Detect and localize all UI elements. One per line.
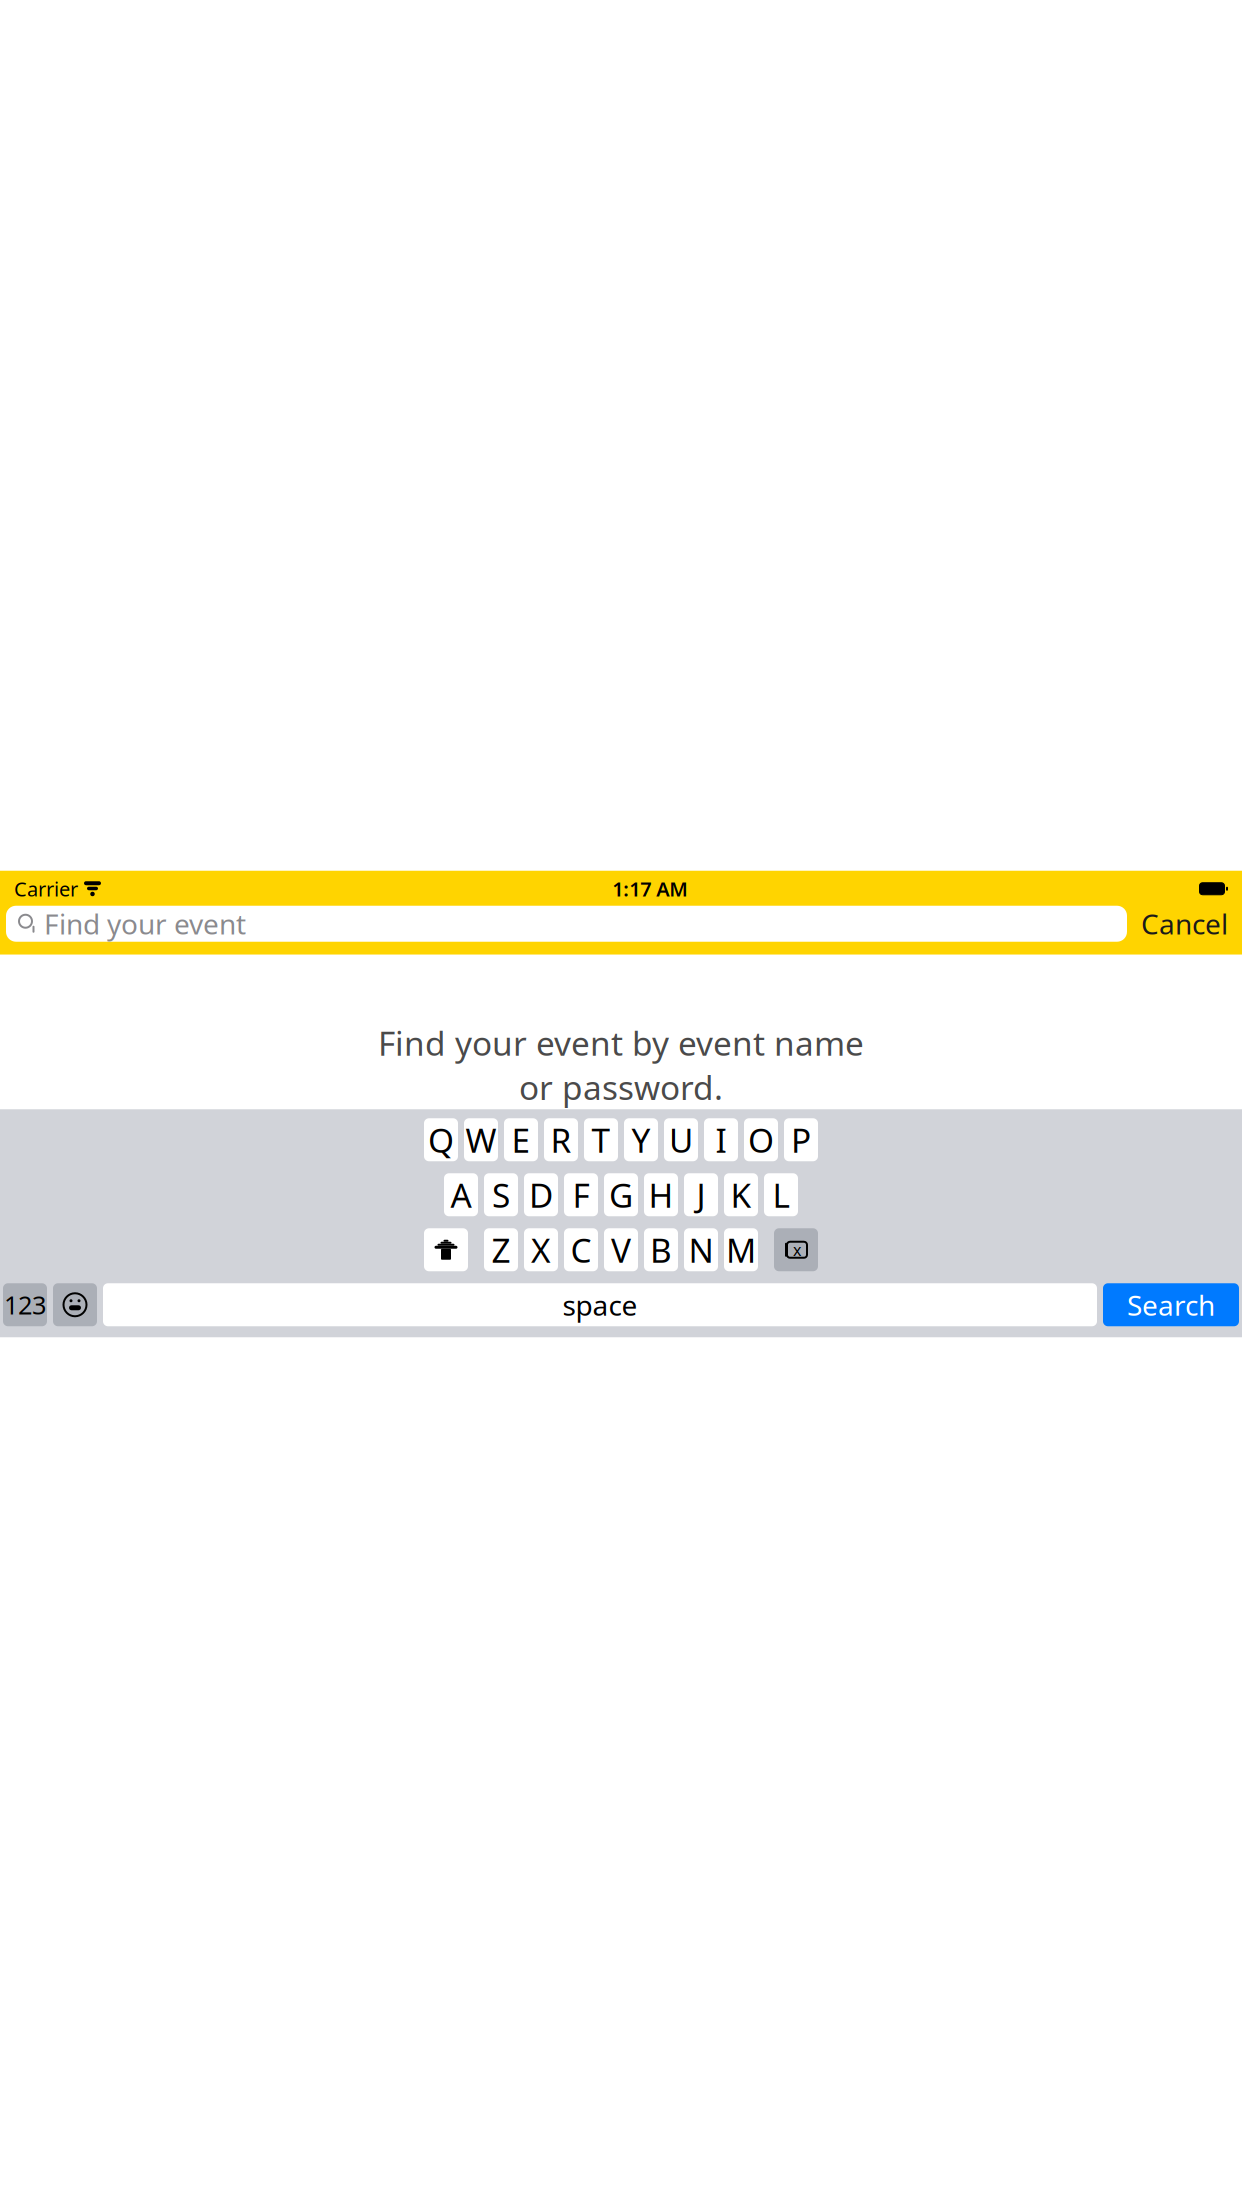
- staticText: Cancel: [1141, 905, 1228, 942]
- staticText: J: [696, 1173, 705, 1217]
- button[interactable]: Y: [624, 1118, 658, 1161]
- button[interactable]: V: [604, 1228, 638, 1271]
- staticText: 123: [4, 1288, 46, 1321]
- button[interactable]: I: [704, 1118, 738, 1161]
- button[interactable]: M: [724, 1228, 758, 1271]
- staticText: B: [650, 1228, 672, 1272]
- staticText: T: [591, 1118, 610, 1162]
- staticText: H: [648, 1173, 673, 1217]
- staticText: D: [529, 1173, 553, 1217]
- button[interactable]: C: [564, 1228, 598, 1271]
- staticText: R: [550, 1118, 571, 1162]
- staticText: space: [562, 1286, 637, 1323]
- staticText: G: [609, 1173, 633, 1217]
- button[interactable]: J: [684, 1173, 718, 1216]
- staticText: Find your event by event name: [378, 1021, 864, 1065]
- button[interactable]: O: [744, 1118, 778, 1161]
- staticText: W: [465, 1118, 496, 1162]
- staticText: Search: [1127, 1286, 1215, 1323]
- button[interactable]: W: [464, 1118, 498, 1161]
- staticText: M: [726, 1228, 756, 1272]
- button[interactable]: Search: [1103, 1283, 1239, 1326]
- button[interactable]: B: [644, 1228, 678, 1271]
- button[interactable]: P: [784, 1118, 818, 1161]
- button[interactable]: 123: [3, 1283, 47, 1326]
- button[interactable]: Find your event: [6, 906, 1127, 942]
- staticText: F: [572, 1173, 589, 1217]
- button[interactable]: H: [644, 1173, 678, 1216]
- staticText: 1:17 AM: [612, 875, 688, 902]
- staticText: N: [688, 1228, 713, 1272]
- staticText: O: [748, 1118, 774, 1162]
- button[interactable]: X: [524, 1228, 558, 1271]
- button[interactable]: G: [604, 1173, 638, 1216]
- button[interactable]: F: [564, 1173, 598, 1216]
- staticText: U: [669, 1118, 693, 1162]
- button[interactable]: Delete: [774, 1228, 818, 1271]
- staticText: X: [531, 1228, 551, 1272]
- button[interactable]: Q: [424, 1118, 458, 1161]
- staticText: K: [730, 1173, 751, 1217]
- staticText: C: [570, 1228, 591, 1272]
- button[interactable]: T: [584, 1118, 618, 1161]
- staticText: Q: [428, 1118, 454, 1162]
- button[interactable]: space: [103, 1283, 1097, 1326]
- staticText: V: [611, 1228, 631, 1272]
- button[interactable]: S: [484, 1173, 518, 1216]
- button[interactable]: E: [504, 1118, 538, 1161]
- staticText: Find your event: [44, 905, 246, 942]
- button[interactable]: Cancel: [1137, 906, 1232, 942]
- staticText: Z: [491, 1228, 510, 1272]
- staticText: S: [492, 1173, 510, 1217]
- button[interactable]: L: [764, 1173, 798, 1216]
- staticText: P: [791, 1118, 811, 1162]
- button[interactable]: R: [544, 1118, 578, 1161]
- button[interactable]: Shift: [424, 1228, 468, 1271]
- staticText: A: [450, 1173, 471, 1217]
- staticText: I: [715, 1118, 726, 1162]
- staticText: Y: [631, 1118, 650, 1162]
- button[interactable]: Z: [484, 1228, 518, 1271]
- button[interactable]: D: [524, 1173, 558, 1216]
- button[interactable]: N: [684, 1228, 718, 1271]
- button[interactable]: Emoji: [53, 1283, 97, 1326]
- staticText: or password.: [519, 1065, 723, 1109]
- button[interactable]: K: [724, 1173, 758, 1216]
- staticText: Carrier: [14, 875, 78, 902]
- button[interactable]: U: [664, 1118, 698, 1161]
- staticText: x: [793, 1239, 801, 1260]
- staticText: E: [511, 1118, 530, 1162]
- button[interactable]: A: [444, 1173, 478, 1216]
- staticText: L: [772, 1173, 789, 1217]
